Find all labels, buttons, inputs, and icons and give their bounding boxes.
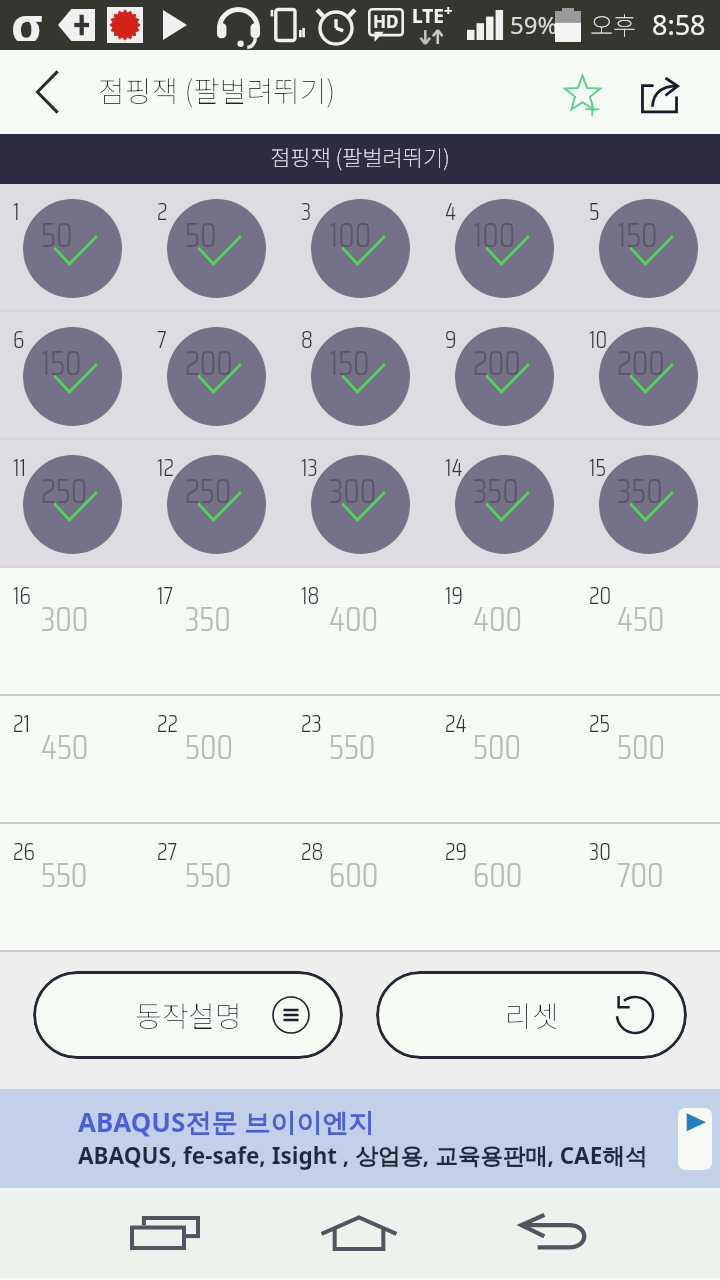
staticText: 동작설명 xyxy=(135,993,242,1035)
button[interactable]: 250 xyxy=(144,440,288,568)
staticText: 20 xyxy=(589,577,612,615)
staticText: 30 xyxy=(589,833,611,871)
button[interactable]: 500 xyxy=(432,696,576,824)
staticText: 8 xyxy=(301,321,313,359)
button[interactable]: Recent apps xyxy=(105,1188,225,1278)
staticText: 27 xyxy=(157,833,178,871)
button[interactable]: 150 xyxy=(576,184,720,312)
button[interactable]: 동작설명 xyxy=(33,971,343,1059)
button[interactable]: 150 xyxy=(288,312,432,440)
button[interactable]: 200 xyxy=(144,312,288,440)
button[interactable]: 500 xyxy=(576,696,720,824)
staticText: 26 xyxy=(13,833,35,871)
staticText: 550 xyxy=(41,848,88,902)
button[interactable]: 450 xyxy=(576,568,720,696)
staticText: 150 xyxy=(41,336,82,390)
staticText: 50 xyxy=(41,208,73,262)
staticText: 13 xyxy=(301,449,318,487)
button[interactable]: Share xyxy=(623,50,695,134)
staticText: ABAQUS, fe-safe, Isight , 상업용, 교육용판매, CA… xyxy=(78,1140,648,1171)
button[interactable]: Back xyxy=(0,50,84,134)
button[interactable]: 50 xyxy=(144,184,288,312)
staticText: 7 xyxy=(157,321,167,359)
staticText: 300 xyxy=(329,464,377,518)
staticText: σ xyxy=(11,0,44,41)
staticText: 500 xyxy=(473,720,521,774)
staticText: 450 xyxy=(41,720,89,774)
button[interactable]: 350 xyxy=(144,568,288,696)
staticText: 23 xyxy=(301,705,322,743)
staticText: 500 xyxy=(185,720,233,774)
button[interactable]: 400 xyxy=(432,568,576,696)
button[interactable]: 700 xyxy=(576,824,720,952)
staticText: 50 xyxy=(185,208,217,262)
button[interactable]: 100 xyxy=(432,184,576,312)
staticText: 5 xyxy=(589,193,600,231)
staticText: 오후 xyxy=(590,6,637,42)
button[interactable]: Home xyxy=(299,1188,419,1278)
button[interactable]: 500 xyxy=(144,696,288,824)
button[interactable]: 200 xyxy=(432,312,576,440)
staticText: 17 xyxy=(157,577,174,615)
button[interactable]: 400 xyxy=(288,568,432,696)
staticText: 21 xyxy=(13,705,30,743)
button[interactable]: 550 xyxy=(288,696,432,824)
staticText: 리셋 xyxy=(505,993,559,1035)
staticText: 550 xyxy=(329,720,376,774)
button[interactable]: Ad information xyxy=(678,1108,712,1170)
staticText: 500 xyxy=(617,720,665,774)
staticText: 9 xyxy=(445,321,457,359)
button[interactable]: 550 xyxy=(144,824,288,952)
button[interactable]: 리셋 xyxy=(376,971,687,1059)
button[interactable]: 300 xyxy=(288,440,432,568)
staticText: ABAQUS전문 브이이엔지 xyxy=(78,1104,375,1140)
staticText: 250 xyxy=(41,464,88,518)
staticText: 600 xyxy=(473,848,523,902)
staticText: 14 xyxy=(445,449,463,487)
staticText: 550 xyxy=(185,848,232,902)
staticText: 700 xyxy=(617,848,664,902)
staticText: 150 xyxy=(617,208,658,262)
staticText: 200 xyxy=(617,336,665,390)
button[interactable]: 550 xyxy=(0,824,144,952)
staticText: 16 xyxy=(13,577,31,615)
staticText: 300 xyxy=(41,592,89,646)
staticText: 350 xyxy=(617,464,663,518)
staticText: 22 xyxy=(157,705,178,743)
button[interactable]: 250 xyxy=(0,440,144,568)
staticText: 19 xyxy=(445,577,463,615)
button[interactable]: 100 xyxy=(288,184,432,312)
staticText: 24 xyxy=(445,705,467,743)
staticText: 12 xyxy=(157,449,174,487)
button[interactable]: 350 xyxy=(432,440,576,568)
button[interactable]: 50 xyxy=(0,184,144,312)
staticText: 200 xyxy=(185,336,233,390)
button[interactable]: 350 xyxy=(576,440,720,568)
staticText: 점핑잭 (팔벌려뛰기) xyxy=(98,68,336,110)
button[interactable]: 450 xyxy=(0,696,144,824)
staticText: 28 xyxy=(301,833,324,871)
button[interactable]: Back xyxy=(494,1188,614,1278)
button[interactable]: 150 xyxy=(0,312,144,440)
staticText: 3 xyxy=(301,193,312,231)
staticText: 450 xyxy=(617,592,665,646)
staticText: LTE xyxy=(412,3,444,29)
button[interactable]: 200 xyxy=(576,312,720,440)
staticText: 6 xyxy=(13,321,25,359)
button[interactable]: 600 xyxy=(432,824,576,952)
staticText: 250 xyxy=(185,464,232,518)
staticText: 11 xyxy=(13,449,26,487)
button[interactable]: 300 xyxy=(0,568,144,696)
staticText: 점핑잭 (팔벌려뛰기) xyxy=(270,140,450,172)
staticText: 100 xyxy=(329,208,372,262)
button[interactable]: 600 xyxy=(288,824,432,952)
staticText: 4 xyxy=(445,193,457,231)
staticText: 25 xyxy=(589,705,610,743)
button[interactable]: Add to favourites xyxy=(546,50,618,134)
staticText: HD xyxy=(373,10,399,33)
staticText: 29 xyxy=(445,833,467,871)
staticText: 1 xyxy=(13,193,20,231)
staticText: 600 xyxy=(329,848,379,902)
staticText: 8:58 xyxy=(652,6,706,43)
staticText: 200 xyxy=(473,336,521,390)
